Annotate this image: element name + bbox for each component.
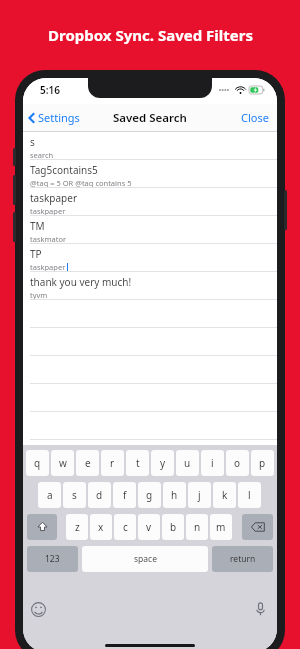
button[interactable]: w xyxy=(51,450,74,476)
staticText: taskmator xyxy=(30,234,67,243)
staticText: z xyxy=(75,520,80,534)
staticText: 5:16 xyxy=(40,83,60,97)
staticText: s xyxy=(30,135,35,149)
button[interactable]: x xyxy=(90,514,112,540)
staticText: @tag = 5 OR @tag contains 5 xyxy=(30,178,132,187)
staticText: o xyxy=(234,456,241,470)
staticText: f xyxy=(123,488,127,502)
button[interactable]: Close xyxy=(233,110,277,125)
button[interactable]: t xyxy=(126,450,149,476)
staticText: taskpaper xyxy=(30,206,66,215)
staticText: thank you very much! xyxy=(30,275,132,289)
staticText: g xyxy=(146,488,153,502)
staticText: v xyxy=(146,520,152,534)
staticText: tyvm xyxy=(30,290,48,299)
button[interactable]: Dictation xyxy=(251,600,269,618)
staticText: m xyxy=(216,520,226,534)
button[interactable]: a xyxy=(38,482,61,508)
button[interactable]: i xyxy=(201,450,224,476)
staticText: e xyxy=(85,456,91,470)
button[interactable]: h xyxy=(163,482,186,508)
button[interactable]: b xyxy=(162,514,184,540)
staticText: a xyxy=(47,488,53,502)
staticText: j xyxy=(198,488,201,502)
staticText: y xyxy=(160,456,166,470)
staticText: search xyxy=(30,150,54,159)
staticText: Settings xyxy=(38,110,80,125)
staticText: n xyxy=(194,520,201,534)
button[interactable]: thank you very much! xyxy=(23,272,277,299)
staticText: taskpaper xyxy=(30,191,78,205)
staticText: h xyxy=(171,488,178,502)
staticText: p xyxy=(259,456,266,470)
staticText: k xyxy=(222,488,228,502)
staticText: u xyxy=(184,456,191,470)
button[interactable]: return xyxy=(212,546,273,572)
button[interactable]: Emoji xyxy=(29,600,47,618)
staticText: s xyxy=(72,488,77,502)
button[interactable]: Settings xyxy=(28,110,80,125)
staticText: q xyxy=(34,456,41,470)
staticText: c xyxy=(123,520,128,534)
button[interactable]: c xyxy=(114,514,136,540)
staticText: Close xyxy=(241,110,269,125)
staticText: 123 xyxy=(45,553,60,565)
button[interactable]: q xyxy=(26,450,49,476)
button[interactable]: d xyxy=(88,482,111,508)
button[interactable]: s xyxy=(23,132,277,159)
staticText: t xyxy=(136,456,140,470)
button[interactable]: g xyxy=(138,482,161,508)
button[interactable]: j xyxy=(188,482,211,508)
button[interactable]: z xyxy=(66,514,88,540)
button[interactable]: TM xyxy=(23,216,277,243)
button[interactable]: u xyxy=(176,450,199,476)
button[interactable]: TP xyxy=(23,244,277,271)
button[interactable]: s xyxy=(63,482,86,508)
staticText: return xyxy=(230,553,256,565)
staticText: b xyxy=(170,520,177,534)
button[interactable]: Tag5contains5 xyxy=(23,160,277,187)
staticText: r xyxy=(110,456,115,470)
button[interactable]: Backspace xyxy=(242,514,273,540)
staticText: taskpaper xyxy=(30,262,66,271)
button[interactable]: l xyxy=(238,482,261,508)
staticText: d xyxy=(96,488,103,502)
button[interactable]: k xyxy=(213,482,236,508)
staticText: Dropbox Sync. Saved Filters xyxy=(48,25,253,45)
staticText: x xyxy=(98,520,104,534)
staticText: Saved Search xyxy=(113,110,187,126)
button[interactable]: p xyxy=(251,450,274,476)
staticText: TP xyxy=(30,247,42,261)
button[interactable]: taskpaper xyxy=(23,188,277,215)
button[interactable]: o xyxy=(226,450,249,476)
button[interactable]: n xyxy=(186,514,208,540)
button[interactable]: r xyxy=(101,450,124,476)
button[interactable]: Shift xyxy=(27,514,57,540)
staticText: w xyxy=(59,456,67,470)
button[interactable]: e xyxy=(76,450,99,476)
staticText: i xyxy=(211,456,214,470)
staticText: space xyxy=(134,553,157,565)
button[interactable]: m xyxy=(210,514,232,540)
staticText: TM xyxy=(30,219,45,233)
button[interactable]: v xyxy=(138,514,160,540)
button[interactable]: f xyxy=(113,482,136,508)
button[interactable]: space xyxy=(82,546,208,572)
staticText: l xyxy=(248,488,251,502)
staticText: Tag5contains5 xyxy=(30,163,98,177)
button[interactable]: y xyxy=(151,450,174,476)
button[interactable]: 123 xyxy=(27,546,78,572)
